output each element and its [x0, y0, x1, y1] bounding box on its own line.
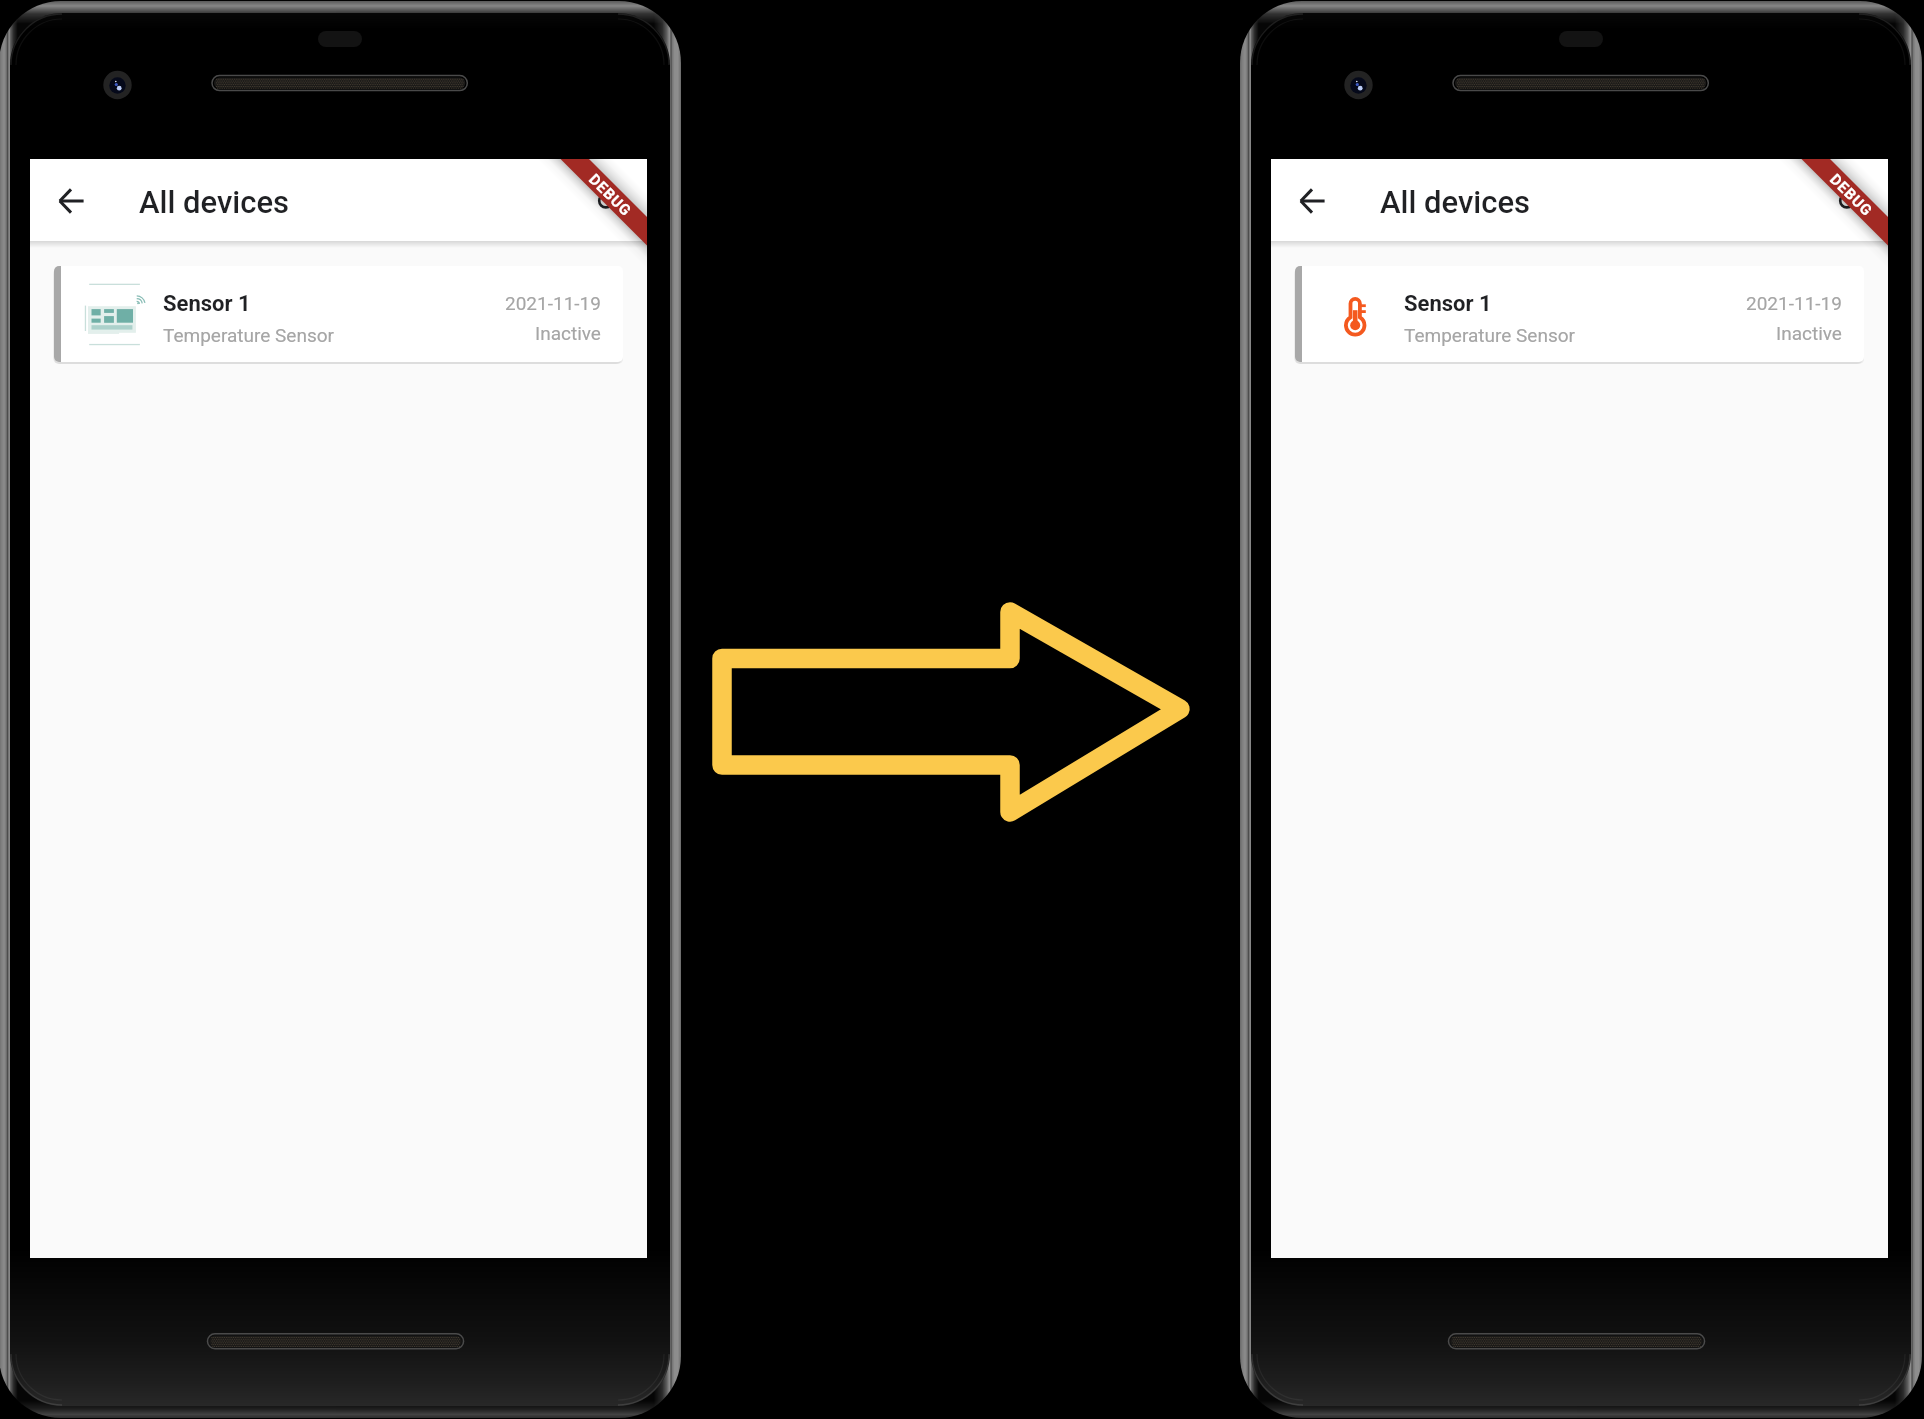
staticText: Inactive: [535, 322, 601, 344]
button[interactable]: Sensor 1: [1295, 266, 1864, 362]
staticText: DEBUG: [585, 170, 635, 220]
staticText: 2021-11-19: [1746, 292, 1842, 314]
button[interactable]: Search: [1828, 182, 1870, 224]
staticText: DEBUG: [1826, 170, 1876, 220]
staticText: Sensor 1: [163, 291, 251, 317]
staticText: Sensor 1: [1404, 291, 1492, 317]
button[interactable]: Sensor 1: [54, 266, 623, 362]
button[interactable]: Back: [30, 160, 112, 242]
button[interactable]: Search: [587, 182, 629, 224]
staticText: Inactive: [1776, 322, 1842, 344]
staticText: 2021-11-19: [505, 292, 601, 314]
staticText: All devices: [139, 184, 289, 220]
staticText: Temperature Sensor: [163, 324, 334, 346]
staticText: Temperature Sensor: [1404, 324, 1575, 346]
staticText: All devices: [1380, 184, 1530, 220]
button[interactable]: Back: [1271, 160, 1353, 242]
